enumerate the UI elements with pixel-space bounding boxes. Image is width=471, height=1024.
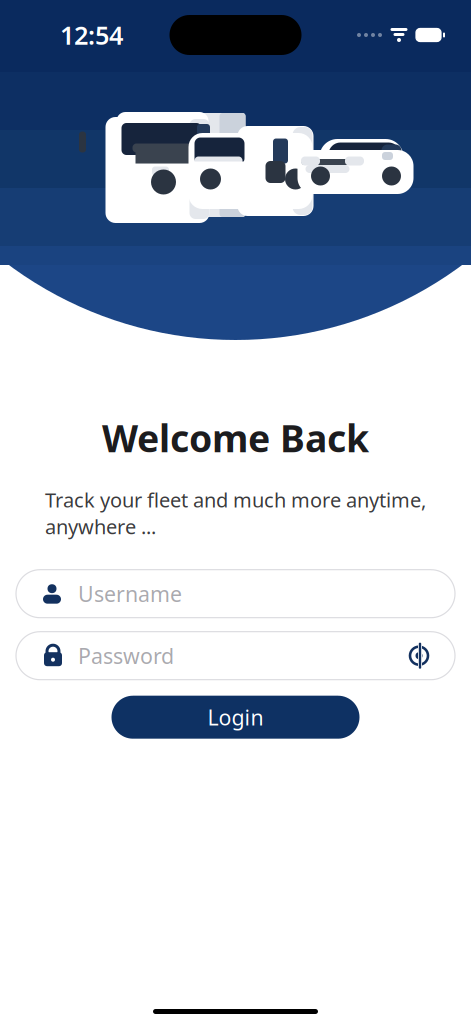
staticText: 12:54 (60, 18, 123, 52)
staticText: Welcome Back (102, 413, 369, 463)
button[interactable]: Login (111, 696, 359, 739)
staticText: Password (78, 641, 174, 670)
button[interactable]: Password (16, 632, 455, 680)
staticText: Username (78, 579, 182, 608)
button[interactable]: Username (16, 570, 455, 618)
staticText: Track your fleet and much more anytime, … (45, 487, 426, 540)
staticText: Login (207, 703, 263, 731)
